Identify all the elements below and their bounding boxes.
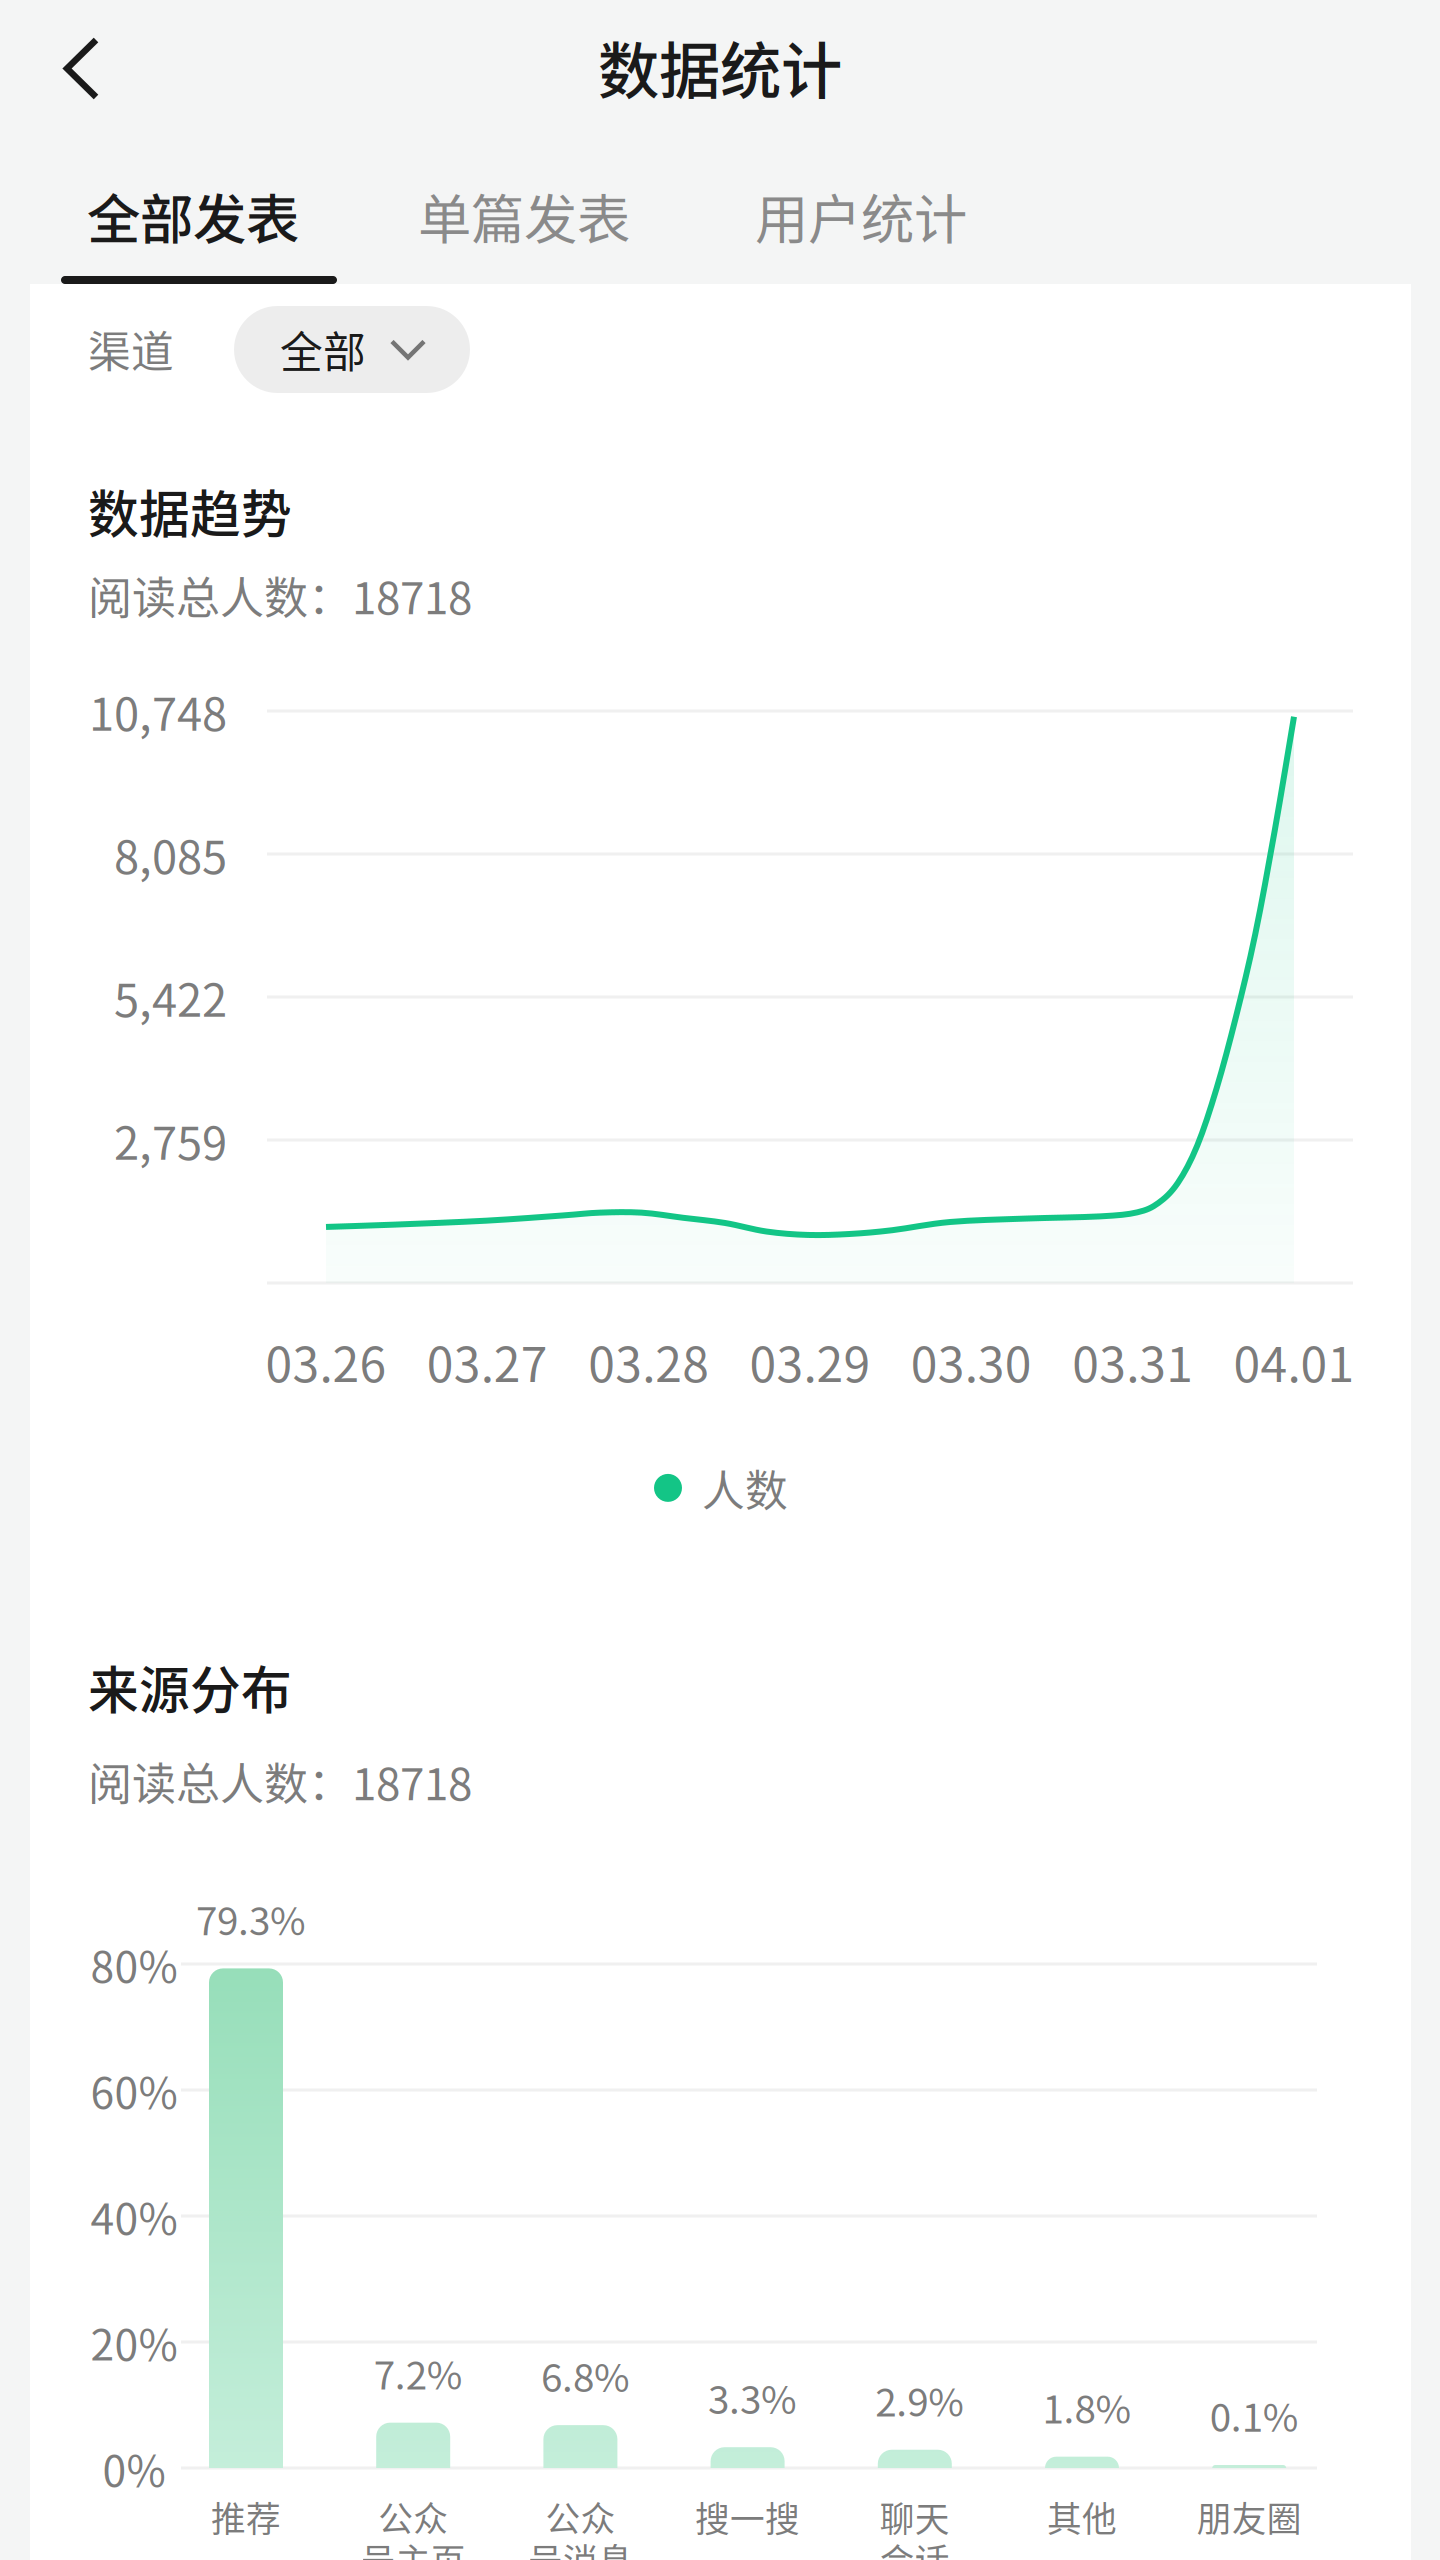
staticText: 人数 xyxy=(702,1457,788,1519)
staticText: 03.28 xyxy=(588,1326,709,1396)
staticText: 来源分布 xyxy=(88,1650,292,1724)
staticText: 用户统计 xyxy=(755,177,967,255)
staticText: 03.26 xyxy=(265,1326,386,1396)
staticText: 全部发表 xyxy=(87,177,299,255)
staticText: 朋友圈 xyxy=(1197,2492,1302,2542)
staticText: 04.01 xyxy=(1233,1326,1354,1396)
staticText: 0% xyxy=(102,2437,165,2499)
staticText: 6.8% xyxy=(541,2347,630,2403)
staticText: 80% xyxy=(90,1933,177,1995)
staticText: 号消息 xyxy=(528,2534,633,2560)
staticText: 60% xyxy=(90,2059,177,2121)
staticText: 单篇发表 xyxy=(418,177,630,255)
staticText: 03.30 xyxy=(911,1326,1032,1396)
staticText: 公众 xyxy=(378,2492,448,2542)
staticText: 聊天 xyxy=(880,2492,950,2542)
staticText: 搜一搜 xyxy=(695,2492,800,2542)
staticText: 2,759 xyxy=(114,1107,227,1173)
staticText: 阅读总人数：18718 xyxy=(88,563,472,627)
button[interactable]: 用户统计 xyxy=(743,158,979,274)
staticText: 0.1% xyxy=(1210,2387,1299,2443)
staticText: 40% xyxy=(90,2185,177,2247)
staticText: 10,748 xyxy=(89,678,227,744)
staticText: 公众 xyxy=(545,2492,615,2542)
button[interactable]: 全部发表 xyxy=(55,158,331,282)
staticText: 数据统计 xyxy=(598,23,842,111)
staticText: 20% xyxy=(90,2311,177,2373)
staticText: 8,085 xyxy=(114,821,227,887)
staticText: 5,422 xyxy=(114,964,227,1030)
staticText: 2.9% xyxy=(875,2372,964,2428)
staticText: 渠道 xyxy=(88,318,174,380)
button[interactable]: Back xyxy=(37,12,136,125)
staticText: 其他 xyxy=(1047,2492,1117,2542)
button[interactable]: 单篇发表 xyxy=(406,158,642,274)
staticText: 7.2% xyxy=(374,2345,463,2401)
staticText: 03.31 xyxy=(1072,1326,1193,1396)
staticText: 03.27 xyxy=(427,1326,548,1396)
staticText: 1.8% xyxy=(1042,2379,1131,2435)
button[interactable]: 全部 xyxy=(234,306,470,393)
staticText: 会话 xyxy=(880,2534,950,2560)
staticText: 03.29 xyxy=(749,1326,870,1396)
staticText: 推荐 xyxy=(211,2492,281,2542)
staticText: 3.3% xyxy=(708,2369,797,2425)
staticText: 79.3% xyxy=(196,1890,306,1946)
staticText: 号主页 xyxy=(361,2534,466,2560)
staticText: 数据趋势 xyxy=(88,474,292,548)
staticText: 阅读总人数：18718 xyxy=(88,1749,472,1813)
staticText: 全部 xyxy=(280,319,366,380)
